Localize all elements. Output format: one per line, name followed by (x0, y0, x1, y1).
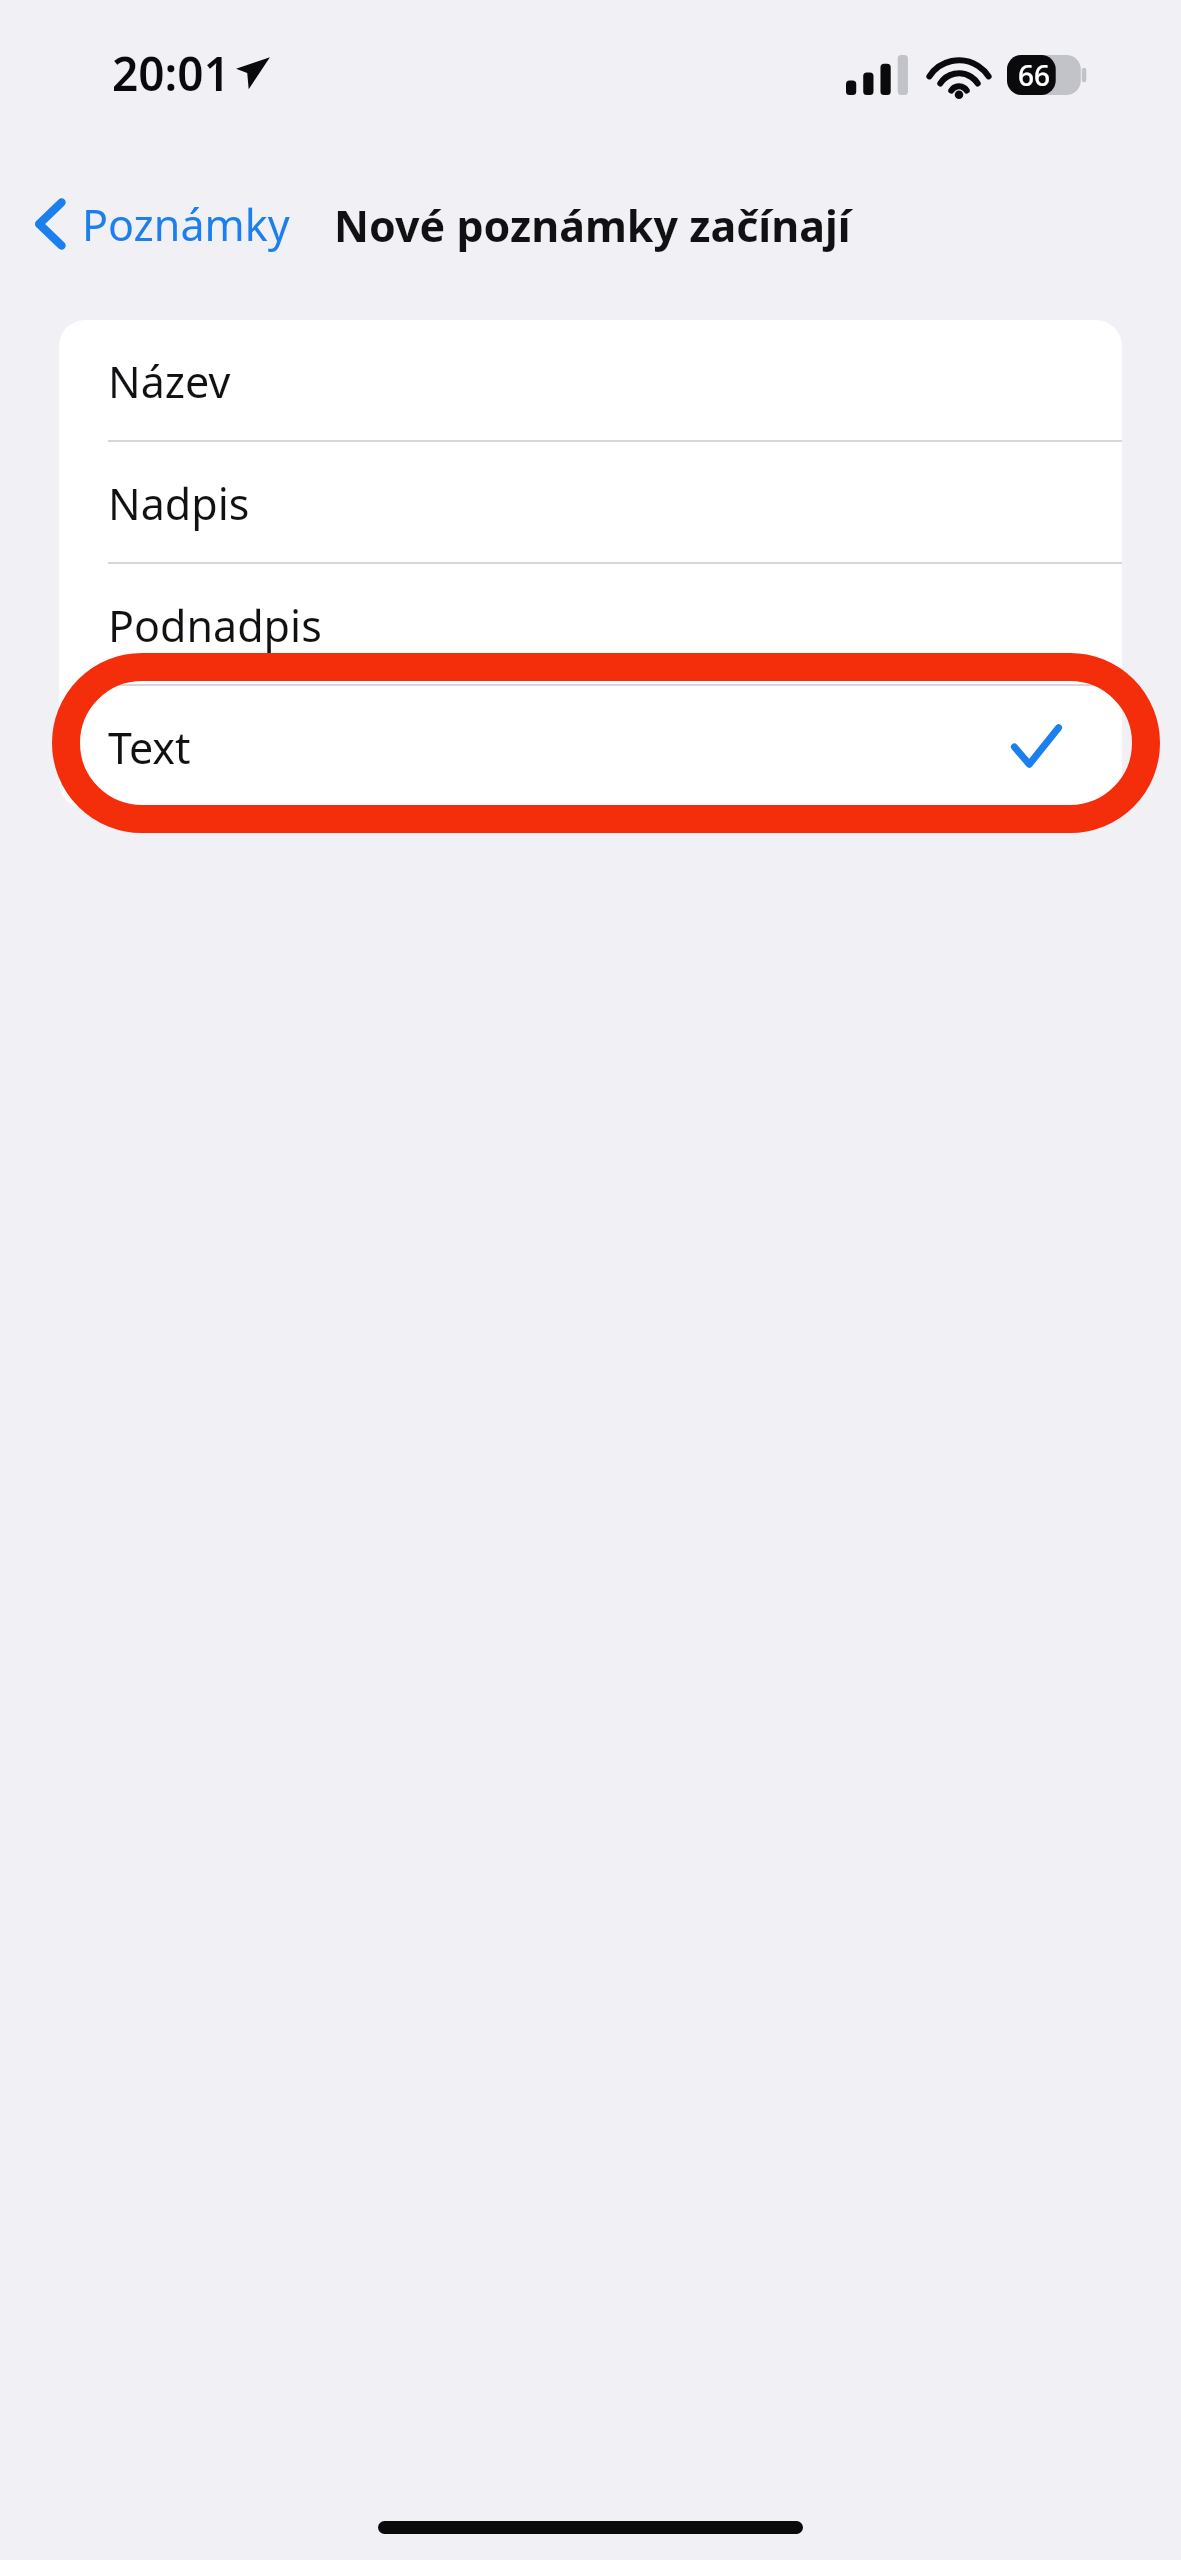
staticText: Nadpis (108, 474, 250, 533)
staticText: 66 (1018, 56, 1051, 94)
staticText: Podnadpis (108, 596, 322, 655)
staticText: 20:01 (112, 42, 230, 104)
button[interactable]: Poznámky (26, 178, 302, 270)
staticText: Text (108, 718, 191, 777)
staticText: Poznámky (82, 195, 290, 254)
button[interactable]: Nadpis (59, 442, 1122, 564)
staticText: Název (108, 352, 231, 411)
button[interactable]: Podnadpis (59, 564, 1122, 686)
button[interactable]: Text (59, 686, 1122, 808)
button[interactable]: Název (59, 320, 1122, 442)
other: Selected (1012, 723, 1060, 771)
staticText: Nové poznámky začínají (334, 196, 851, 255)
